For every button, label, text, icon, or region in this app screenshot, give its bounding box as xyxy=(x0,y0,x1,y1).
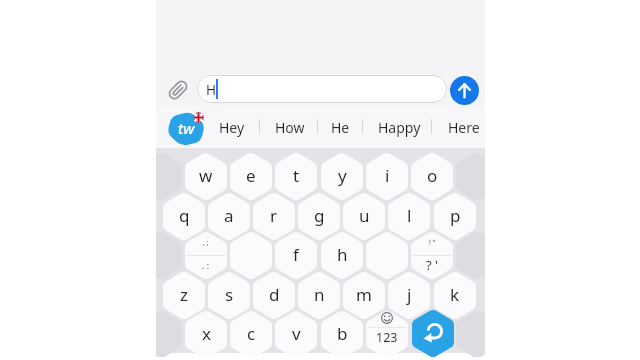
staticText: How xyxy=(275,118,305,137)
staticText: z xyxy=(180,283,188,306)
staticText: He xyxy=(331,118,350,137)
button[interactable]: He xyxy=(310,113,370,141)
button[interactable]: How xyxy=(260,113,320,141)
button[interactable]: g xyxy=(298,192,340,241)
button[interactable]: o xyxy=(411,152,453,201)
button[interactable] xyxy=(450,76,479,105)
button[interactable] xyxy=(230,231,272,280)
button[interactable] xyxy=(412,309,454,357)
button[interactable]: H xyxy=(197,75,447,103)
button[interactable]: m xyxy=(343,271,385,320)
button[interactable] xyxy=(456,152,485,201)
button[interactable]: n xyxy=(298,271,340,320)
button[interactable]: j xyxy=(388,271,430,320)
staticText: Happy xyxy=(378,118,421,137)
staticText: w xyxy=(199,164,213,187)
staticText: g xyxy=(314,204,325,227)
staticText: 123 xyxy=(376,329,398,346)
staticText: tw xyxy=(178,118,195,138)
staticText: c xyxy=(247,322,256,345)
button[interactable]: r xyxy=(253,192,295,241)
button[interactable] xyxy=(366,231,408,280)
button[interactable]: a xyxy=(208,192,250,241)
button[interactable]: w xyxy=(185,152,227,201)
button[interactable] xyxy=(156,231,182,280)
staticText: ! " xyxy=(429,238,436,248)
button[interactable]: y xyxy=(321,152,363,201)
button[interactable]: l xyxy=(388,192,430,241)
button[interactable]: i xyxy=(366,152,408,201)
button[interactable]: ! " xyxy=(411,231,453,280)
staticText: y xyxy=(338,164,347,187)
button[interactable]: 123 xyxy=(366,310,408,357)
staticText: m xyxy=(356,283,372,306)
button[interactable]: e xyxy=(230,152,272,201)
button[interactable]: f xyxy=(275,231,317,280)
staticText: i xyxy=(385,164,390,187)
button[interactable] xyxy=(156,152,182,201)
staticText: . : xyxy=(202,259,210,271)
button[interactable] xyxy=(156,310,182,357)
staticText: l xyxy=(407,204,412,227)
button[interactable] xyxy=(158,70,198,110)
button[interactable]: Hey xyxy=(202,113,262,141)
button[interactable]: t xyxy=(275,152,317,201)
button[interactable]: b xyxy=(321,310,363,357)
button[interactable]: Here xyxy=(434,113,494,141)
button[interactable] xyxy=(456,231,485,280)
staticText: H xyxy=(206,81,217,99)
button[interactable]: h xyxy=(321,231,363,280)
button[interactable]: tw xyxy=(168,111,204,147)
staticText: f xyxy=(293,243,299,266)
button[interactable]: s xyxy=(208,271,250,320)
staticText: p xyxy=(450,204,461,227)
staticText: o xyxy=(427,164,438,187)
button[interactable]: Happy xyxy=(369,113,429,141)
staticText: r xyxy=(270,204,278,227)
staticText: u xyxy=(359,204,370,227)
staticText: Hey xyxy=(219,118,245,137)
staticText: d xyxy=(269,283,280,306)
button[interactable] xyxy=(456,310,485,357)
staticText: j xyxy=(407,283,412,306)
staticText: b xyxy=(337,322,348,345)
button[interactable]: u xyxy=(343,192,385,241)
staticText: n xyxy=(314,283,325,306)
staticText: x xyxy=(202,322,211,345)
staticText: Here xyxy=(448,118,480,137)
button[interactable]: p xyxy=(434,192,476,241)
staticText: ? ' xyxy=(426,256,438,274)
button[interactable]: c xyxy=(230,310,272,357)
staticText: h xyxy=(337,243,348,266)
staticText: s xyxy=(225,283,234,306)
staticText: a xyxy=(224,204,234,227)
staticText: e xyxy=(246,164,256,187)
button[interactable]: , ; xyxy=(185,231,227,280)
staticText: , ; xyxy=(203,238,209,248)
button[interactable]: d xyxy=(253,271,295,320)
button[interactable]: v xyxy=(275,310,317,357)
staticText: q xyxy=(179,204,190,227)
staticText: v xyxy=(292,322,301,345)
staticText: t xyxy=(293,164,300,187)
button[interactable]: z xyxy=(163,271,205,320)
button[interactable]: k xyxy=(434,271,476,320)
staticText: k xyxy=(450,283,460,306)
button[interactable]: x xyxy=(185,310,227,357)
button[interactable]: q xyxy=(163,192,205,241)
